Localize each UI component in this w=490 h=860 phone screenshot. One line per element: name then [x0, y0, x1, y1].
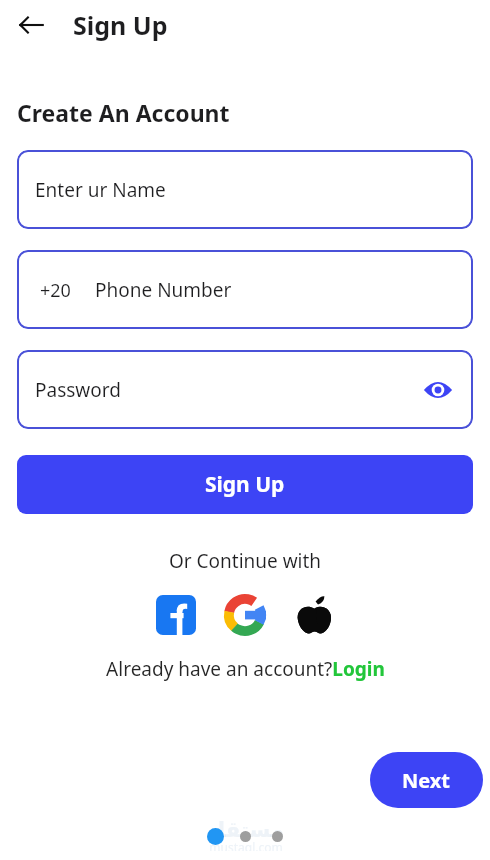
staticText: Or Continue with	[0, 548, 490, 574]
button[interactable]: +20	[17, 250, 473, 329]
staticText: mustaql.com	[209, 839, 283, 851]
button[interactable]: Next	[370, 752, 483, 808]
staticText: Sign Up	[205, 470, 285, 499]
button[interactable]: Continue with Google	[222, 592, 268, 638]
staticText: Phone Number	[95, 277, 232, 303]
button[interactable]: Show password	[421, 373, 455, 407]
staticText: Already have an account?Login	[106, 656, 385, 682]
staticText: Next	[402, 767, 451, 794]
button[interactable]: Enter ur Name	[17, 150, 473, 229]
button[interactable]: Password	[17, 350, 473, 429]
button[interactable]: Continue with Apple	[291, 592, 337, 638]
staticText: Create An Account	[17, 97, 230, 128]
staticText: +20	[40, 278, 71, 303]
staticText: Sign Up	[73, 8, 168, 42]
button[interactable]: Back	[13, 7, 49, 43]
staticText: مستقل	[207, 818, 284, 842]
button[interactable]: Sign Up	[17, 455, 473, 514]
button[interactable]: Already have an account?Login	[0, 656, 490, 682]
staticText: Enter ur Name	[35, 177, 166, 203]
button[interactable]: Continue with Facebook	[153, 592, 199, 638]
staticText: Password	[35, 377, 121, 403]
